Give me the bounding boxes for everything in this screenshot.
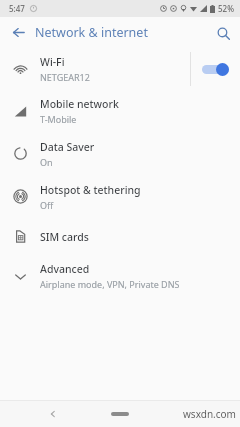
staticText: Off [40, 199, 54, 211]
staticText: SIM cards [40, 230, 89, 244]
staticText: Wi-Fi [40, 55, 65, 69]
staticText: Network & internet [35, 24, 148, 41]
button[interactable]: Wi-Fi [0, 48, 240, 90]
button[interactable]: Advanced [0, 255, 240, 297]
button[interactable]: Hotspot & tethering [0, 175, 240, 218]
staticText: T-Mobile [40, 113, 77, 125]
staticText: On [40, 156, 53, 168]
button[interactable]: Back [8, 22, 29, 43]
staticText: Data Saver [40, 140, 95, 154]
button[interactable]: Search [212, 22, 234, 44]
button[interactable]: Home [105, 406, 135, 422]
staticText: 5:47 [9, 3, 25, 14]
staticText: 52% [218, 3, 234, 14]
button[interactable]: Back [44, 405, 62, 423]
button[interactable]: Data Saver [0, 132, 240, 175]
staticText: NETGEAR12 [40, 71, 90, 83]
staticText: wsxdn.com [183, 407, 236, 421]
staticText: Hotspot & tethering [40, 183, 141, 197]
staticText: Airplane mode, VPN, Private DNS [40, 278, 180, 290]
button[interactable]: SIM cards [0, 218, 240, 255]
staticText: Advanced [40, 262, 90, 276]
button[interactable]: Mobile network [0, 90, 240, 132]
button[interactable]: Wi-Fi toggle [202, 63, 229, 76]
staticText: Mobile network [40, 97, 119, 111]
